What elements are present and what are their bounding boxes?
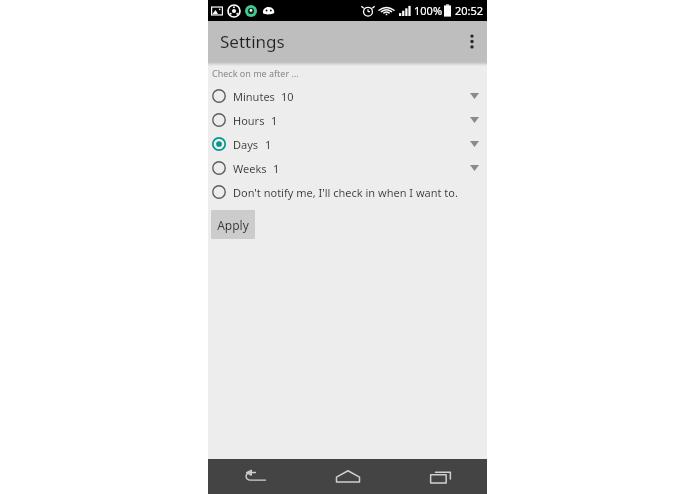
button[interactable]: Home — [301, 459, 394, 494]
staticText: Weeks — [233, 161, 267, 176]
button[interactable]: Minutes — [208, 84, 487, 108]
button[interactable]: Don't notify me, I'll check in when I wa… — [208, 180, 487, 204]
staticText: 10 — [281, 89, 294, 104]
button[interactable]: Apply — [211, 210, 255, 239]
staticText: Days — [233, 137, 259, 152]
staticText: Minutes — [233, 89, 275, 104]
button[interactable]: Weeks — [208, 156, 487, 180]
staticText: 1 — [271, 113, 278, 128]
button[interactable]: More options — [457, 21, 487, 62]
button[interactable]: Days — [208, 132, 487, 156]
staticText: Check on me after ... — [212, 67, 299, 79]
staticText: Don't notify me, I'll check in when I wa… — [233, 185, 458, 200]
staticText: Hours — [233, 113, 265, 128]
button[interactable]: Recent apps — [394, 459, 487, 494]
staticText: 100% — [414, 3, 443, 18]
button[interactable]: Back — [208, 459, 301, 494]
button[interactable]: Open Minutes list — [461, 84, 487, 108]
staticText: Settings — [220, 30, 285, 53]
staticText: 1 — [273, 161, 280, 176]
button[interactable]: Open Hours list — [461, 108, 487, 132]
button[interactable]: Open Weeks list — [461, 156, 487, 180]
staticText: 20:52 — [455, 3, 484, 18]
staticText: Apply — [217, 217, 249, 233]
staticText: 1 — [265, 137, 272, 152]
button[interactable]: Hours — [208, 108, 487, 132]
button[interactable]: Open Days list — [461, 132, 487, 156]
